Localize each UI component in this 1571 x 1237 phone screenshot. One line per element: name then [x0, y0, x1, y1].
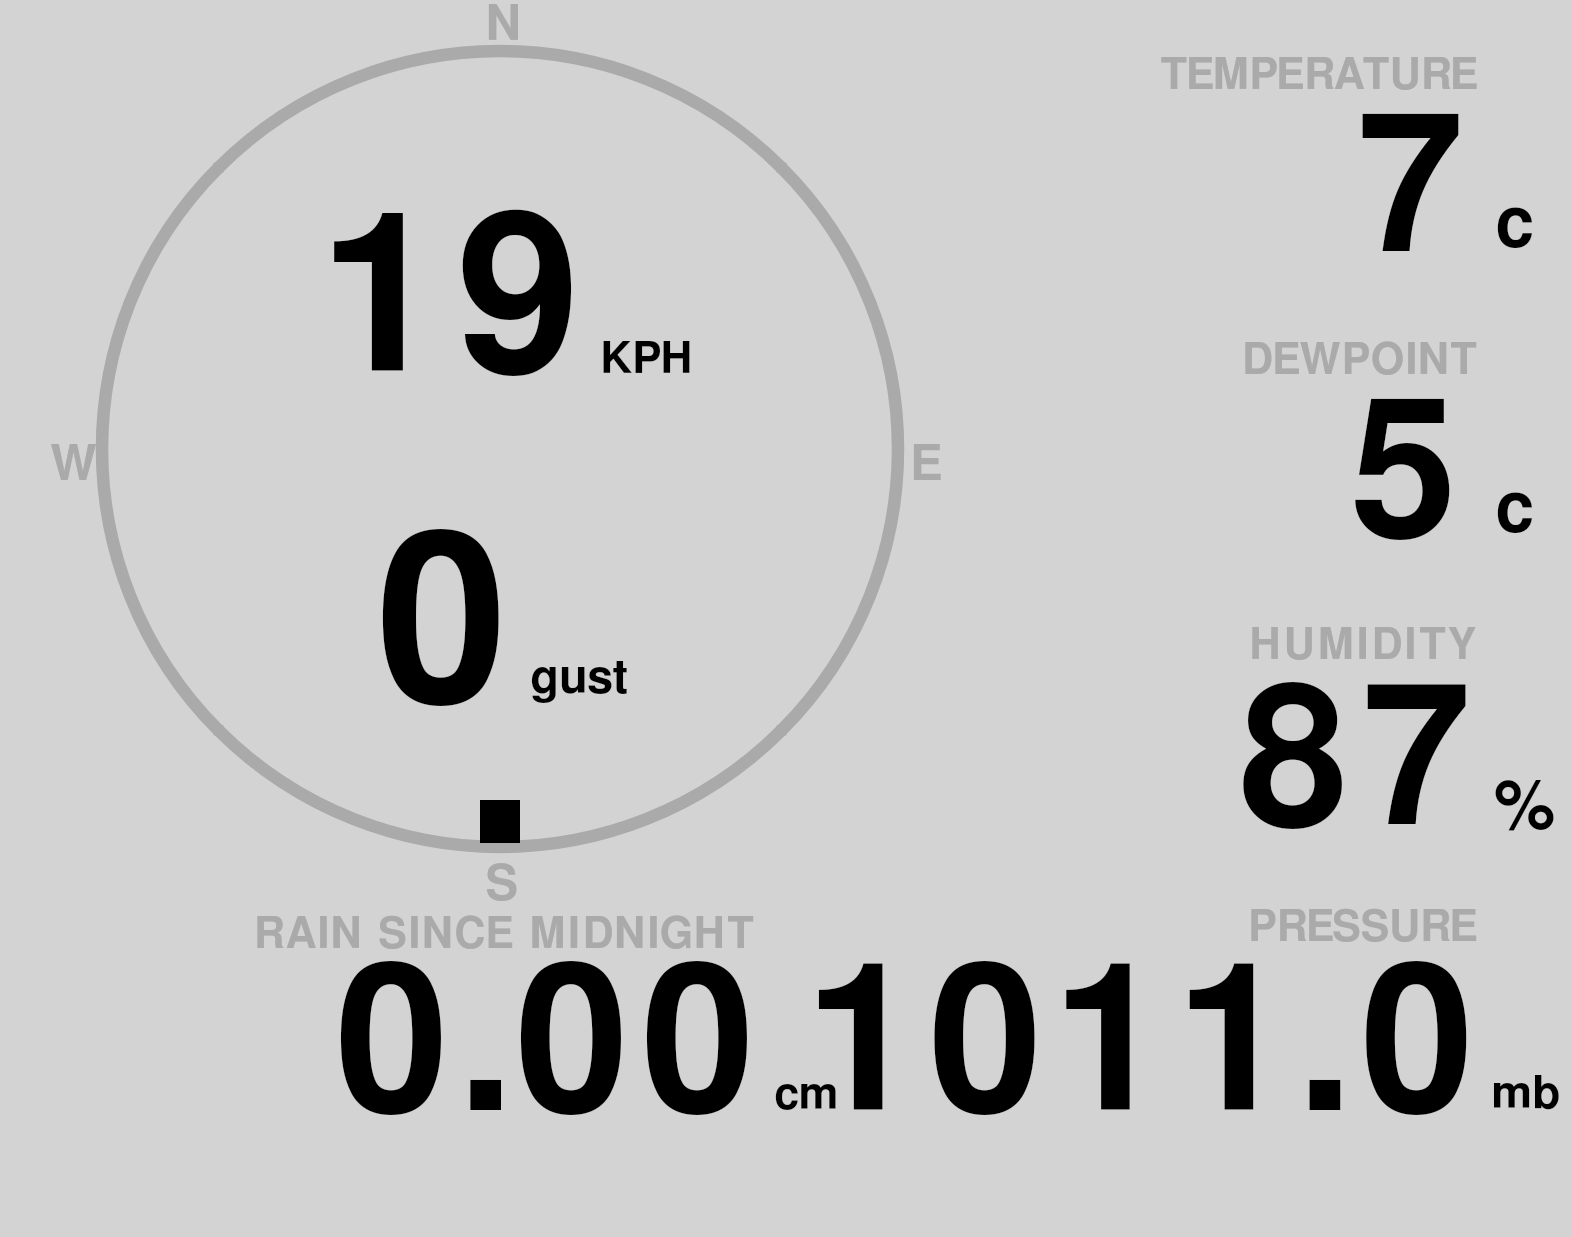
- button[interactable]: RAIN SINCE MIDNIGHT: [230, 900, 850, 1130]
- staticText: 1011.0: [805, 946, 1484, 1151]
- button[interactable]: HUMIDITY: [1140, 610, 1571, 840]
- staticText: S: [485, 861, 519, 910]
- staticText: 87: [1239, 667, 1485, 863]
- button[interactable]: 19: [300, 180, 720, 400]
- staticText: cm: [774, 1073, 839, 1118]
- staticText: 7: [1357, 97, 1464, 289]
- staticText: PRESSURE: [1248, 907, 1478, 950]
- staticText: E: [910, 441, 943, 490]
- staticText: 0: [376, 511, 508, 731]
- staticText: gust: [530, 655, 629, 702]
- staticText: 19: [319, 193, 594, 413]
- staticText: RAIN SINCE MIDNIGHT: [254, 914, 757, 957]
- staticText: TEMPERATURE: [1160, 55, 1479, 98]
- button[interactable]: TEMPERATURE: [1140, 40, 1571, 270]
- staticText: 5: [1350, 382, 1457, 574]
- button[interactable]: DEWPOINT: [1140, 325, 1571, 555]
- staticText: %: [1494, 774, 1556, 843]
- button[interactable]: Wind direction dial: [96, 45, 904, 853]
- staticText: c: [1495, 475, 1535, 545]
- staticText: W: [50, 441, 97, 490]
- staticText: KPH: [600, 338, 694, 382]
- staticText: 0.: [335, 946, 523, 1151]
- staticText: mb: [1491, 1071, 1561, 1117]
- button[interactable]: 0: [360, 500, 650, 720]
- staticText: c: [1495, 190, 1535, 260]
- staticText: DEWPOINT: [1242, 340, 1479, 383]
- button[interactable]: PRESSURE: [790, 893, 1571, 1130]
- staticText: HUMIDITY: [1249, 625, 1479, 668]
- staticText: N: [485, 1, 522, 50]
- staticText: 00: [515, 946, 767, 1151]
